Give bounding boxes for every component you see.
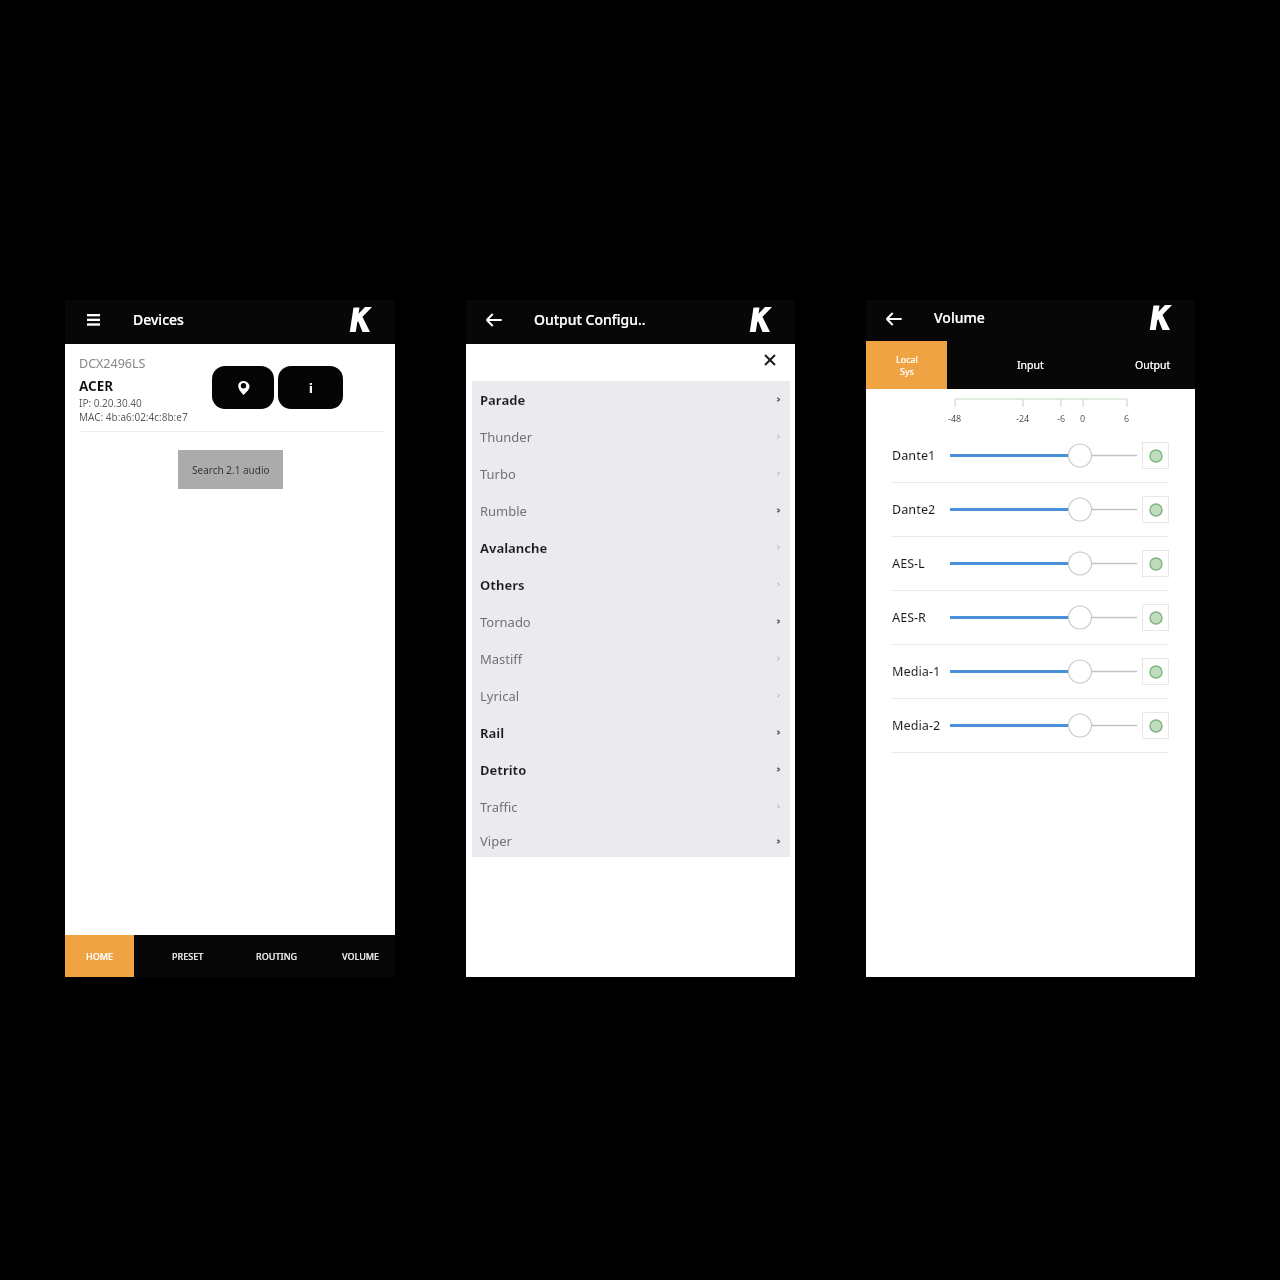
staticText: Media-1	[892, 663, 941, 680]
button[interactable]: AES-R	[866, 591, 1195, 644]
button[interactable]: Parade	[472, 381, 790, 418]
staticText: HOME	[86, 950, 114, 962]
staticText: i	[309, 379, 313, 397]
button[interactable]: Mute Dante2	[1142, 496, 1169, 523]
button[interactable]: Back	[480, 298, 508, 342]
button[interactable]: Output	[1114, 341, 1192, 389]
staticText: Lyrical	[480, 687, 520, 705]
button[interactable]: Others	[472, 566, 790, 603]
button[interactable]: Mute AES-R	[1142, 604, 1169, 631]
button[interactable]: Mute Media-1	[1142, 658, 1169, 685]
staticText: Dante1	[892, 447, 936, 464]
button[interactable]: Dante2	[866, 483, 1195, 536]
button[interactable]: Lyrical	[472, 677, 790, 714]
staticText: Output	[1135, 358, 1171, 372]
staticText: Avalanche	[480, 539, 548, 557]
button[interactable]: Detrito	[472, 751, 790, 788]
staticText: Rumble	[480, 502, 527, 520]
staticText: MAC: 4b:a6:02:4c:8b:e7	[79, 410, 188, 424]
staticText: VOLUME	[342, 950, 380, 962]
staticText: -48	[948, 412, 962, 424]
button[interactable]: Turbo	[472, 455, 790, 492]
staticText: Volume	[934, 308, 985, 327]
staticText: Turbo	[480, 465, 516, 483]
staticText: Media-2	[892, 717, 941, 734]
button[interactable]: Local Sys	[866, 341, 947, 389]
staticText: PRESET	[172, 950, 204, 962]
button[interactable]: VOLUME	[323, 935, 399, 977]
button[interactable]: Mute Media-2	[1142, 712, 1169, 739]
staticText: Thunder	[480, 428, 533, 446]
staticText: Input	[1017, 358, 1044, 372]
button[interactable]: Tornado	[472, 603, 790, 640]
button[interactable]: PRESET	[150, 935, 226, 977]
staticText: -6	[1057, 412, 1066, 424]
staticText: DCX2496LS	[79, 355, 146, 372]
staticText: Search 2.1 audio	[192, 463, 270, 477]
staticText: AES-L	[892, 555, 925, 572]
button[interactable]: AES-L	[866, 537, 1195, 590]
staticText: Others	[480, 576, 525, 594]
button[interactable]: Media-2	[866, 699, 1195, 752]
button[interactable]: HOME	[65, 935, 134, 977]
button[interactable]: Media-1	[866, 645, 1195, 698]
button[interactable]: Traffic	[472, 788, 790, 825]
button[interactable]: Search 2.1 audio	[178, 450, 283, 489]
staticText: ROUTING	[256, 950, 298, 962]
staticText: 6	[1124, 412, 1130, 424]
staticText: ACER	[79, 377, 114, 395]
button[interactable]: Thunder	[472, 418, 790, 455]
button[interactable]: Device info	[278, 366, 343, 409]
button[interactable]: Dante1	[866, 429, 1195, 482]
staticText: Viper	[480, 832, 512, 850]
button[interactable]: Rumble	[472, 492, 790, 529]
button[interactable]: Avalanche	[472, 529, 790, 566]
button[interactable]: Mastiff	[472, 640, 790, 677]
staticText: Local Sys	[896, 353, 918, 378]
button[interactable]: Mute AES-L	[1142, 550, 1169, 577]
staticText: Tornado	[480, 613, 531, 631]
button[interactable]: ROUTING	[239, 935, 315, 977]
staticText: Detrito	[480, 761, 527, 779]
button[interactable]: Locate device	[212, 366, 274, 409]
button[interactable]: Viper	[472, 825, 790, 857]
staticText: -24	[1016, 412, 1030, 424]
button[interactable]: Rail	[472, 714, 790, 751]
staticText: 0	[1080, 412, 1086, 424]
button[interactable]: Back	[880, 298, 908, 339]
button[interactable]: Close	[758, 348, 782, 372]
button[interactable]: Mute Dante1	[1142, 442, 1169, 469]
button[interactable]: Menu	[79, 298, 107, 342]
staticText: Traffic	[480, 798, 518, 816]
staticText: Mastiff	[480, 650, 523, 668]
staticText: Parade	[480, 391, 526, 409]
staticText: Output Configu..	[534, 310, 646, 329]
staticText: AES-R	[892, 609, 926, 626]
staticText: Devices	[133, 310, 184, 329]
button[interactable]: Input	[991, 341, 1069, 389]
staticText: Rail	[480, 724, 505, 742]
staticText: IP: 0.20.30.40	[79, 396, 142, 410]
staticText: Dante2	[892, 501, 936, 518]
